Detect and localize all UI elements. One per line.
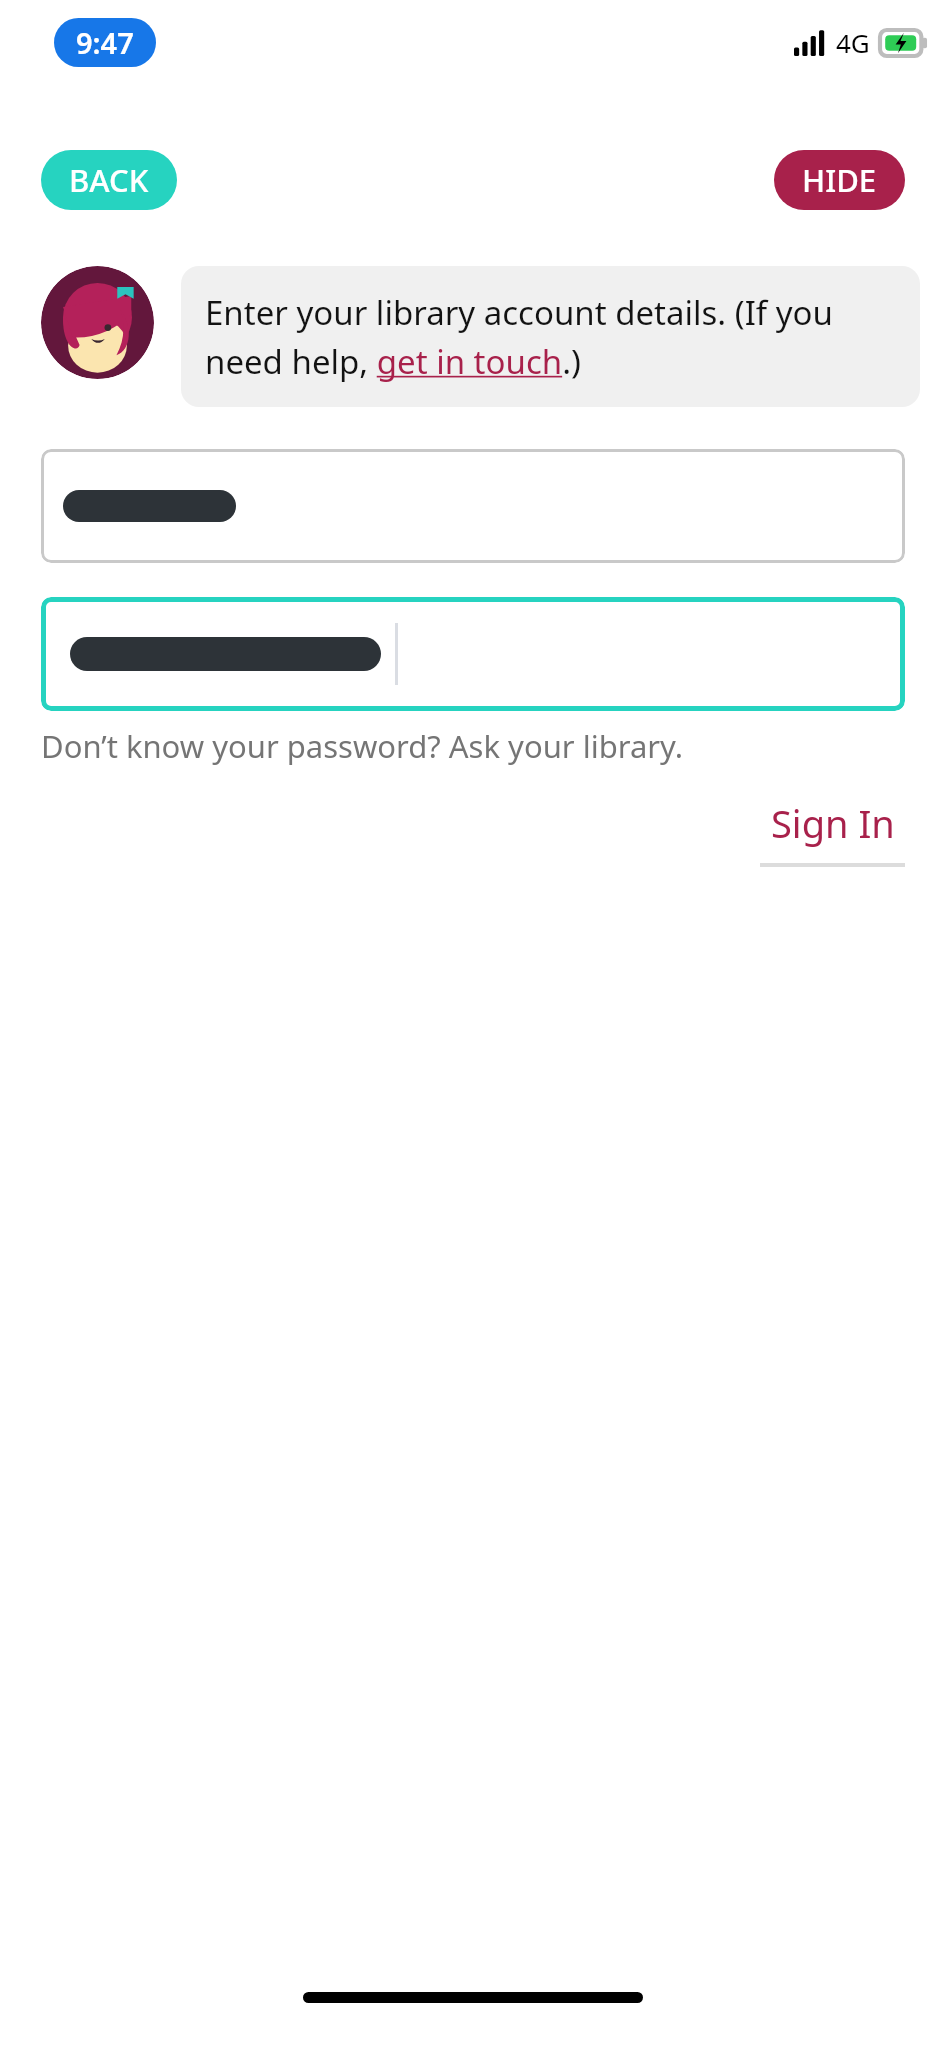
staticText: BACK (69, 159, 149, 201)
staticText: 4G (836, 25, 870, 60)
button[interactable]: HIDE (774, 150, 905, 210)
staticText: 9:47 (76, 23, 134, 62)
staticText: HIDE (802, 159, 877, 201)
button[interactable] (41, 597, 905, 711)
button[interactable]: Sign In (760, 795, 905, 867)
staticText: Enter your library account details. (If … (205, 290, 896, 383)
button[interactable] (41, 449, 905, 563)
button[interactable]: BACK (41, 150, 177, 210)
staticText: Sign In (771, 797, 895, 849)
staticText: Don’t know your password? Ask your libra… (41, 725, 683, 767)
